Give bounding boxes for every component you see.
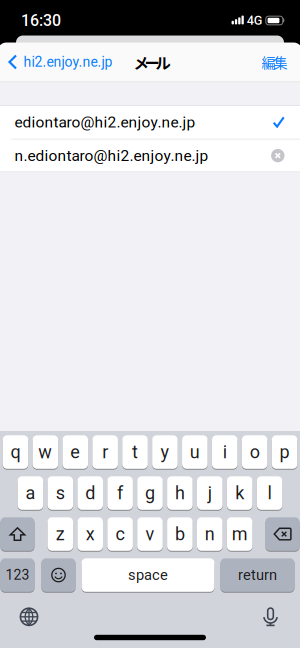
staticText: i bbox=[223, 441, 227, 463]
staticText: t bbox=[132, 441, 138, 463]
button[interactable]: d bbox=[77, 476, 103, 510]
staticText: c bbox=[116, 523, 125, 545]
button[interactable]: z bbox=[47, 517, 73, 551]
button[interactable]: r bbox=[92, 435, 118, 469]
button[interactable]: ediontaro@hi2.enjoy.ne.jp bbox=[0, 106, 300, 139]
staticText: z bbox=[56, 523, 65, 545]
staticText: x bbox=[86, 523, 95, 545]
staticText: 16:30 bbox=[21, 11, 61, 30]
button[interactable]: t bbox=[122, 435, 148, 469]
button[interactable]: o bbox=[242, 435, 267, 469]
button[interactable]: i bbox=[212, 435, 238, 469]
staticText: 4G bbox=[247, 13, 263, 28]
button[interactable]: q bbox=[3, 435, 28, 469]
staticText: k bbox=[235, 482, 244, 504]
button[interactable]: hi2.enjoy.ne.jp bbox=[0, 54, 112, 70]
button[interactable]: s bbox=[47, 476, 73, 510]
button[interactable]: w bbox=[33, 435, 58, 469]
staticText: hi2.enjoy.ne.jp bbox=[23, 54, 112, 70]
staticText: return bbox=[238, 566, 277, 584]
staticText: q bbox=[10, 441, 20, 463]
button[interactable]: Emoji bbox=[41, 558, 75, 592]
button[interactable]: Shift bbox=[0, 517, 34, 551]
staticText: v bbox=[145, 523, 154, 545]
button[interactable]: m bbox=[227, 517, 252, 551]
staticText: space bbox=[128, 566, 168, 584]
button[interactable]: c bbox=[107, 517, 133, 551]
staticText: メール bbox=[133, 51, 170, 73]
button[interactable]: Next keyboard bbox=[0, 607, 38, 626]
staticText: l bbox=[268, 482, 272, 504]
staticText: a bbox=[25, 482, 35, 504]
button[interactable]: e bbox=[62, 435, 88, 469]
staticText: r bbox=[102, 441, 108, 463]
staticText: u bbox=[190, 441, 200, 463]
button[interactable]: b bbox=[167, 517, 193, 551]
staticText: d bbox=[85, 482, 95, 504]
button[interactable]: p bbox=[272, 435, 297, 469]
button[interactable]: n bbox=[197, 517, 223, 551]
button[interactable]: y bbox=[152, 435, 178, 469]
button[interactable]: a bbox=[18, 476, 43, 510]
staticText: m bbox=[232, 523, 248, 545]
button[interactable]: k bbox=[227, 476, 252, 510]
staticText: g bbox=[145, 482, 155, 504]
staticText: o bbox=[250, 441, 260, 463]
staticText: 編集 bbox=[261, 52, 287, 72]
staticText: y bbox=[160, 441, 169, 463]
button[interactable]: n.ediontaro@hi2.enjoy.ne.jp bbox=[0, 140, 300, 172]
staticText: j bbox=[208, 482, 212, 504]
staticText: n.ediontaro@hi2.enjoy.ne.jp bbox=[14, 146, 208, 165]
button[interactable]: x bbox=[77, 517, 103, 551]
button[interactable]: u bbox=[182, 435, 208, 469]
button[interactable]: space bbox=[81, 558, 214, 592]
button[interactable]: Dictation bbox=[262, 607, 300, 627]
staticText: b bbox=[175, 523, 185, 545]
staticText: s bbox=[56, 482, 65, 504]
button[interactable]: h bbox=[167, 476, 193, 510]
staticText: n bbox=[205, 523, 215, 545]
staticText: 123 bbox=[5, 567, 29, 583]
button[interactable]: Delete bbox=[265, 517, 299, 551]
staticText: w bbox=[38, 441, 52, 463]
button[interactable]: f bbox=[107, 476, 133, 510]
button[interactable]: g bbox=[137, 476, 163, 510]
staticText: e bbox=[70, 441, 80, 463]
staticText: ediontaro@hi2.enjoy.ne.jp bbox=[14, 113, 195, 131]
button[interactable]: j bbox=[197, 476, 223, 510]
button[interactable]: v bbox=[137, 517, 163, 551]
staticText: h bbox=[175, 482, 185, 504]
button[interactable]: 編集 bbox=[261, 52, 300, 72]
button[interactable]: return bbox=[220, 558, 294, 592]
staticText: f bbox=[117, 482, 123, 504]
button[interactable]: 123 bbox=[0, 558, 34, 592]
button[interactable]: l bbox=[257, 476, 282, 510]
staticText: p bbox=[280, 441, 290, 463]
